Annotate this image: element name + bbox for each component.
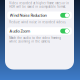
staticText: Audio Zoom: [9, 28, 30, 34]
button[interactable]: Wind Noise Reduction: [7, 11, 72, 19]
staticText: Reduce wind noise in recorded videos.: [9, 20, 66, 24]
staticText: Video recorded at higher frame rates or …: [9, 1, 69, 8]
button[interactable]: Audio Zoom: [7, 27, 72, 35]
staticText: Wind Noise Reduction: [9, 13, 46, 18]
staticText: Match the audio to the video framing whi…: [9, 36, 61, 43]
